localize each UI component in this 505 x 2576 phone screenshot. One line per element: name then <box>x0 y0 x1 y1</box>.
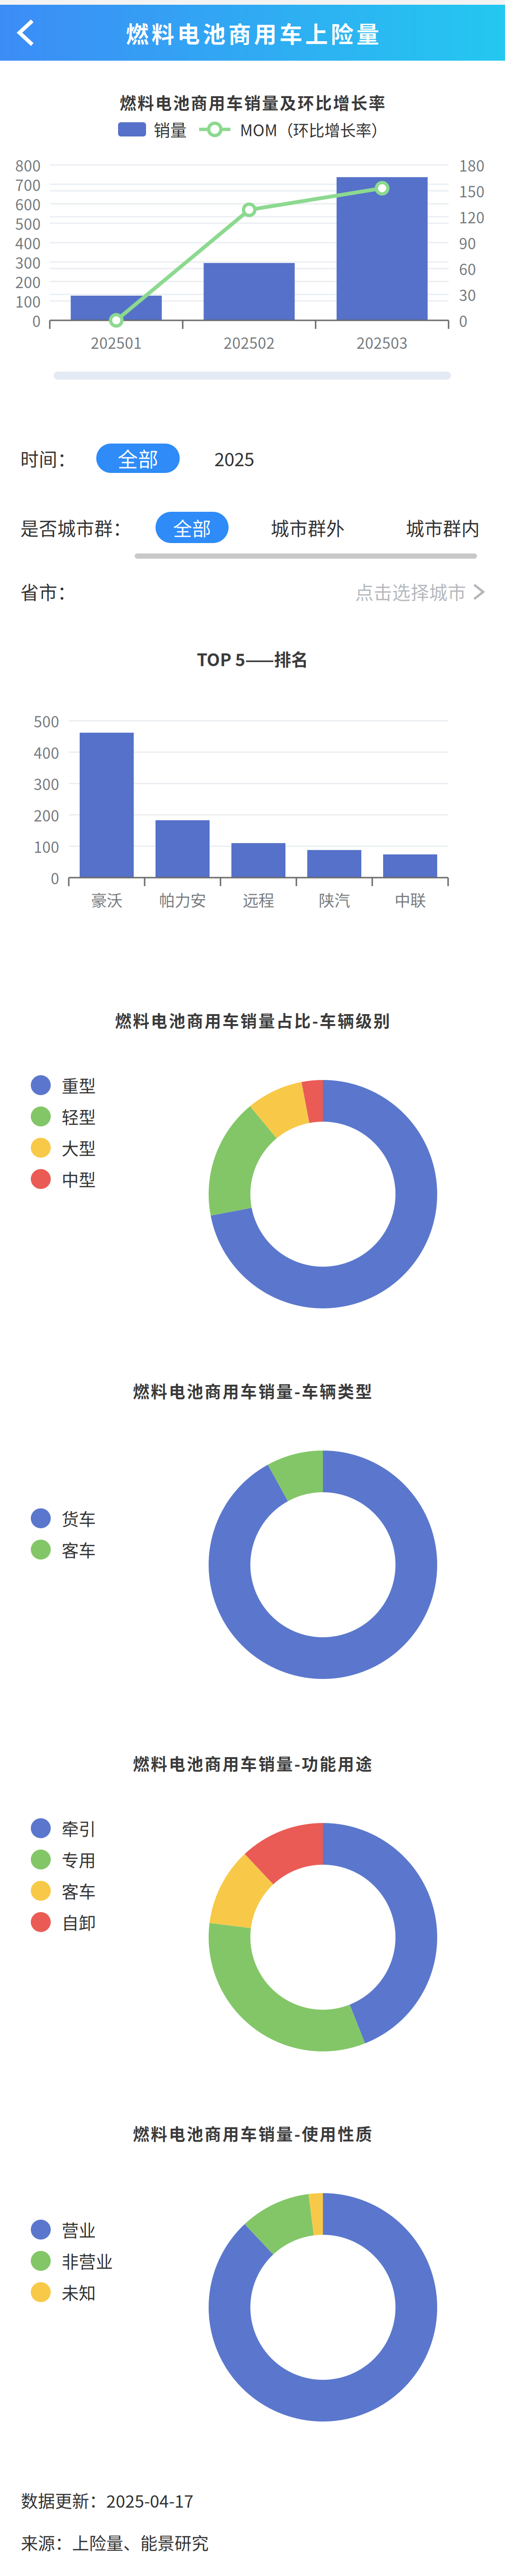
button[interactable]: 全部 <box>96 444 180 473</box>
staticText: 燃料电池商用车销量-功能用途 <box>133 1751 372 1775</box>
staticText: 陕汽 <box>319 888 350 911</box>
staticText: 客车 <box>62 1878 96 1903</box>
button[interactable]: 返回 <box>0 5 55 61</box>
staticText: 2025 <box>214 445 254 472</box>
staticText: 中联 <box>395 888 426 911</box>
staticText: 200 <box>34 804 59 826</box>
staticText: 100 <box>15 290 41 312</box>
staticText: 轻型 <box>62 1104 96 1129</box>
staticText: 0 <box>51 867 59 889</box>
staticText: 0 <box>459 309 468 331</box>
button[interactable]: 省市： <box>0 574 505 608</box>
button[interactable]: 2025 <box>203 444 265 473</box>
staticText: 全部 <box>118 444 158 473</box>
staticText: 800 <box>15 154 41 176</box>
staticText: 120 <box>459 206 485 228</box>
staticText: 400 <box>15 232 41 254</box>
staticText: 点击选择城市 <box>355 578 466 605</box>
staticText: 营业 <box>62 2217 96 2242</box>
staticText: 中型 <box>62 1167 96 1191</box>
staticText: 燃料电池商用车上险量 <box>126 16 379 49</box>
staticText: 300 <box>15 251 41 273</box>
staticText: 远程 <box>243 888 274 911</box>
staticText: 202501 <box>91 331 142 353</box>
staticText: 300 <box>34 773 59 794</box>
staticText: 来源：上险量、能景研究 <box>21 2530 209 2555</box>
staticText: 全部 <box>173 514 211 541</box>
staticText: 600 <box>15 193 41 215</box>
staticText: 30 <box>459 283 476 305</box>
staticText: 60 <box>459 258 476 279</box>
button[interactable]: 城市群内 <box>398 512 488 543</box>
staticText: 是否城市群： <box>20 514 131 541</box>
staticText: 牵引 <box>62 1816 96 1841</box>
staticText: 重型 <box>62 1073 96 1098</box>
staticText: 城市群外 <box>271 514 345 541</box>
staticText: 自卸 <box>62 1910 96 1934</box>
staticText: 货车 <box>62 1506 96 1531</box>
staticText: 400 <box>34 741 59 763</box>
staticText: TOP 5——排名 <box>197 646 308 671</box>
staticText: 省市： <box>20 578 76 605</box>
staticText: 200 <box>15 270 41 292</box>
staticText: 非营业 <box>62 2249 113 2273</box>
staticText: 燃料电池商用车销量-车辆类型 <box>133 1379 372 1403</box>
staticText: 未知 <box>62 2280 96 2304</box>
staticText: 客车 <box>62 1537 96 1562</box>
button[interactable]: 城市群外 <box>263 512 353 543</box>
staticText: 500 <box>34 710 59 732</box>
staticText: 时间： <box>20 445 76 472</box>
staticText: 豪沃 <box>91 888 122 911</box>
staticText: 180 <box>459 154 485 176</box>
staticText: MOM（环比增长率） <box>240 118 387 141</box>
staticText: 150 <box>459 180 485 202</box>
staticText: 燃料电池商用车销量及环比增长率 <box>120 90 385 114</box>
staticText: 销量 <box>154 117 187 141</box>
staticText: 燃料电池商用车销量-使用性质 <box>133 2122 372 2145</box>
staticText: 城市群内 <box>406 514 480 541</box>
staticText: 专用 <box>62 1847 96 1872</box>
staticText: 100 <box>34 835 59 857</box>
staticText: 燃料电池商用车销量占比-车辆级别 <box>115 1008 390 1032</box>
staticText: 700 <box>15 173 41 195</box>
staticText: 帕力安 <box>159 888 206 911</box>
staticText: 数据更新：2025-04-17 <box>21 2488 193 2513</box>
staticText: 202502 <box>224 331 275 353</box>
staticText: 500 <box>15 212 41 234</box>
staticText: 大型 <box>62 1135 96 1160</box>
staticText: 90 <box>459 232 476 254</box>
staticText: 0 <box>32 309 41 331</box>
staticText: 202503 <box>356 331 408 353</box>
button[interactable]: 全部 <box>156 512 229 543</box>
